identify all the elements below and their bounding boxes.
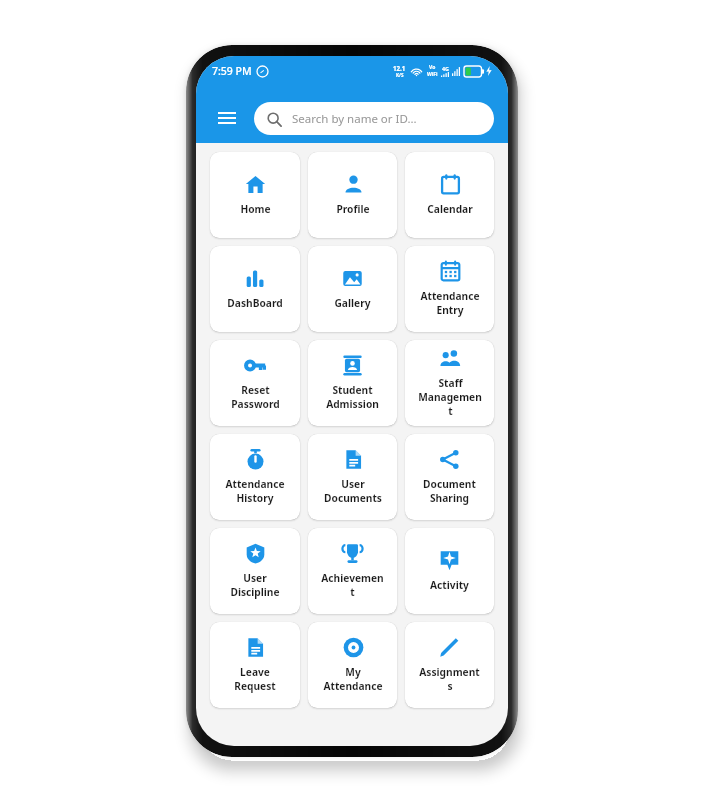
button[interactable]: Reset <box>210 340 300 426</box>
staticText: Discipline <box>230 585 280 599</box>
staticText: Sharing <box>430 491 469 505</box>
staticText: User <box>341 477 365 491</box>
staticText: s <box>447 679 453 693</box>
button[interactable]: Menu <box>210 101 244 135</box>
button[interactable]: Home <box>210 152 300 238</box>
staticText: Entry <box>436 303 464 317</box>
button[interactable]: User <box>308 434 397 520</box>
button[interactable]: Activity <box>405 528 494 614</box>
staticText: Request <box>234 679 276 693</box>
staticText: Attendance <box>323 679 383 693</box>
button[interactable]: Document <box>405 434 494 520</box>
staticText: Vo <box>429 64 436 71</box>
button[interactable]: DashBoard <box>210 246 300 332</box>
button[interactable]: My <box>308 622 397 708</box>
staticText: WiFi <box>427 71 438 78</box>
button[interactable]: Attendance <box>405 246 494 332</box>
staticText: Attendance <box>225 477 285 491</box>
button[interactable]: Calendar <box>405 152 494 238</box>
staticText: Staff <box>438 376 463 390</box>
staticText: Activity <box>430 578 469 592</box>
staticText: Reset <box>241 383 270 397</box>
button[interactable]: Attendance <box>210 434 300 520</box>
staticText: Achievemen <box>321 571 384 585</box>
staticText: Gallery <box>334 296 371 310</box>
staticText: DashBoard <box>227 296 283 310</box>
staticText: t <box>350 585 355 599</box>
button[interactable]: Search by name or ID... <box>254 102 494 135</box>
button[interactable]: Gallery <box>308 246 397 332</box>
staticText: Attendance <box>420 289 480 303</box>
staticText: Profile <box>336 202 370 216</box>
staticText: 7:59 PM <box>212 64 252 78</box>
staticText: Home <box>240 202 271 216</box>
staticText: Document <box>423 477 476 491</box>
staticText: My <box>345 665 361 679</box>
button[interactable]: Profile <box>308 152 397 238</box>
staticText: t <box>448 404 453 418</box>
staticText: 12.1 <box>393 64 406 72</box>
staticText: Search by name or ID... <box>292 111 417 127</box>
staticText: 4G <box>442 65 449 72</box>
staticText: Assignment <box>419 665 480 679</box>
button[interactable]: Student <box>308 340 397 426</box>
staticText: Calendar <box>427 202 473 216</box>
button[interactable]: Assignment <box>405 622 494 708</box>
staticText: K/S <box>396 72 404 78</box>
staticText: Leave <box>240 665 270 679</box>
staticText: Password <box>231 397 280 411</box>
button[interactable]: Staff <box>405 340 494 426</box>
staticText: Student <box>332 383 373 397</box>
button[interactable]: Leave <box>210 622 300 708</box>
button[interactable]: User <box>210 528 300 614</box>
staticText: Admission <box>326 397 379 411</box>
staticText: Managemen <box>418 390 482 404</box>
staticText: Documents <box>324 491 382 505</box>
staticText: User <box>243 571 267 585</box>
staticText: History <box>236 491 274 505</box>
button[interactable]: Achievemen <box>308 528 397 614</box>
